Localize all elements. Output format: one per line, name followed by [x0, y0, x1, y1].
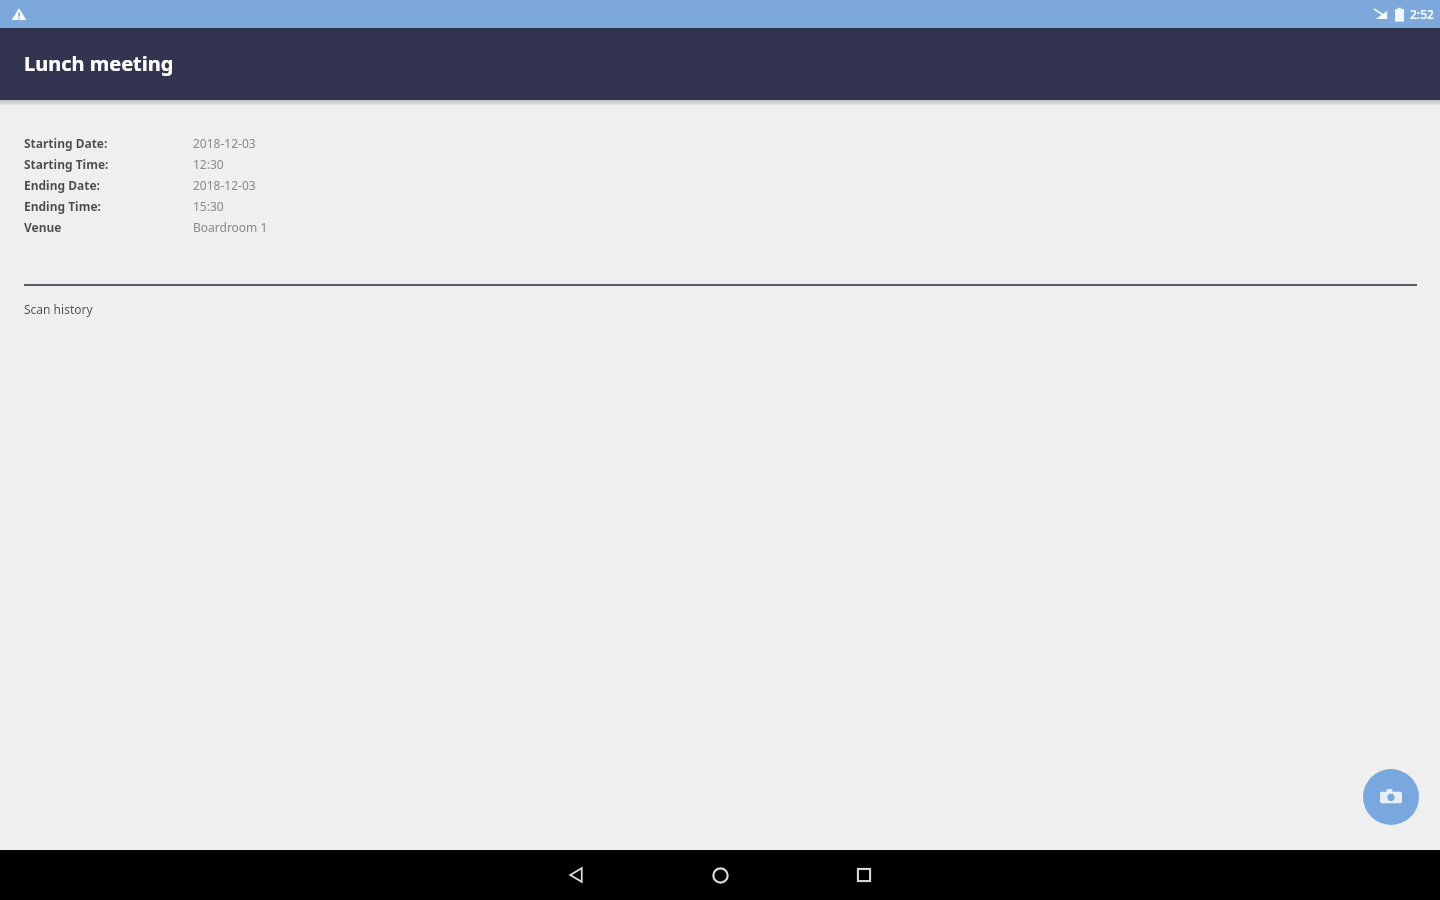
staticText: Ending Date: [24, 177, 193, 193]
staticText: 2018-12-03 [193, 177, 256, 193]
button[interactable]: Scan history [24, 296, 1417, 322]
staticText: 2:52 [1410, 6, 1434, 22]
button[interactable]: Recent apps [833, 850, 895, 900]
button[interactable]: Scan QR code with camera [1363, 769, 1419, 825]
button[interactable]: Home [689, 850, 751, 900]
staticText: Ending Time: [24, 198, 193, 214]
staticText: Starting Date: [24, 135, 193, 151]
staticText: Scan history [24, 301, 93, 317]
staticText: 15:30 [193, 198, 224, 214]
staticText: 12:30 [193, 156, 224, 172]
staticText: Boardroom 1 [193, 219, 268, 235]
staticText: Starting Time: [24, 156, 193, 172]
staticText: Lunch meeting [24, 50, 174, 77]
staticText: 2018-12-03 [193, 135, 256, 151]
button[interactable]: Back [545, 850, 607, 900]
staticText: Venue [24, 219, 193, 235]
